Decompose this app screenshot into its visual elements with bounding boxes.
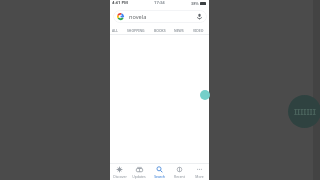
button[interactable]: VIDEO — [193, 28, 204, 33]
button[interactable]: More — [189, 164, 209, 180]
staticText: IIIIIII — [294, 106, 316, 117]
staticText: Updates — [132, 174, 146, 179]
staticText: 38% — [191, 1, 199, 6]
button[interactable]: BOOKS — [154, 28, 166, 33]
staticText: Discover — [113, 174, 127, 179]
staticText: novela — [129, 13, 147, 21]
button[interactable]: ALL — [112, 28, 118, 33]
button[interactable]: Recent — [169, 164, 189, 180]
staticText: 17:34 — [154, 0, 165, 6]
button[interactable]: Discover — [110, 164, 129, 180]
staticText: 4:41 PM — [112, 0, 129, 6]
button[interactable]: Search — [149, 164, 169, 180]
staticText: BOOKS — [154, 28, 166, 33]
button[interactable]: NEWS — [174, 28, 184, 33]
button[interactable]: Assistant — [200, 90, 210, 100]
staticText: More — [195, 174, 204, 179]
staticText: NEWS — [174, 28, 184, 33]
button[interactable]: Badge — [288, 95, 320, 128]
staticText: VIDEO — [193, 28, 204, 33]
button[interactable]: Voice search — [196, 13, 203, 20]
staticText: ALL — [112, 28, 118, 33]
button[interactable] — [113, 10, 207, 23]
button[interactable]: SHOPPING — [127, 28, 145, 33]
button[interactable]: Updates — [129, 164, 149, 180]
staticText: Search — [154, 174, 165, 179]
staticText: SHOPPING — [127, 28, 145, 33]
staticText: Recent — [174, 174, 185, 179]
